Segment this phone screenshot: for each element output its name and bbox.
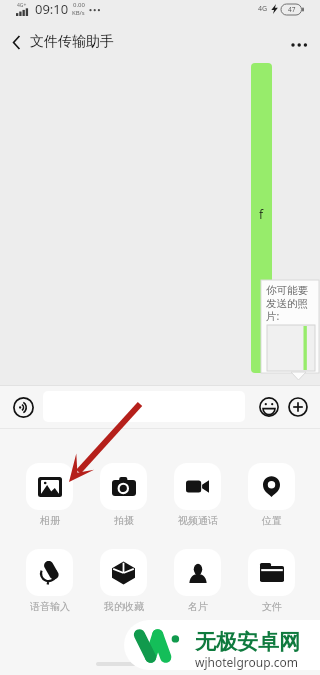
button[interactable] — [43, 391, 245, 422]
staticText: 位置 — [262, 514, 282, 527]
staticText: 09:10 — [35, 0, 69, 18]
staticText: wjhotelgroup.com — [195, 654, 299, 670]
staticText: 4G — [258, 4, 268, 14]
button[interactable]: 视频通话 — [168, 463, 227, 527]
staticText: 名片 — [188, 600, 208, 613]
staticText: 无极安卓网 — [195, 629, 300, 655]
button[interactable]: 名片 — [168, 549, 227, 613]
button[interactable]: 相册 — [20, 463, 79, 527]
button[interactable]: 语音输入 — [20, 549, 79, 613]
button[interactable]: 文件 — [242, 549, 301, 613]
button[interactable]: More — [286, 29, 312, 55]
staticText: 0.00 — [73, 1, 85, 9]
staticText: 文件传输助手 — [30, 33, 114, 51]
staticText: 相册 — [40, 514, 60, 527]
staticText: 我的收藏 — [104, 600, 144, 613]
button[interactable]: Voice input — [8, 392, 38, 422]
staticText: 语音输入 — [30, 600, 70, 613]
staticText: 你可能要发送的照片: — [266, 284, 311, 323]
button[interactable]: Back — [4, 30, 28, 54]
button[interactable]: 我的收藏 — [94, 549, 153, 613]
button[interactable]: 位置 — [242, 463, 301, 527]
staticText: 拍摄 — [114, 514, 134, 527]
staticText: 视频通话 — [178, 514, 218, 527]
staticText: 文件 — [262, 600, 282, 613]
button[interactable]: 拍摄 — [94, 463, 153, 527]
button[interactable]: More options — [284, 393, 312, 421]
staticText: KB/s — [72, 9, 85, 17]
staticText: f — [259, 206, 264, 222]
staticText: 4G+ — [17, 2, 27, 9]
button[interactable]: Emoji — [255, 393, 283, 421]
staticText: 47 — [288, 5, 296, 14]
